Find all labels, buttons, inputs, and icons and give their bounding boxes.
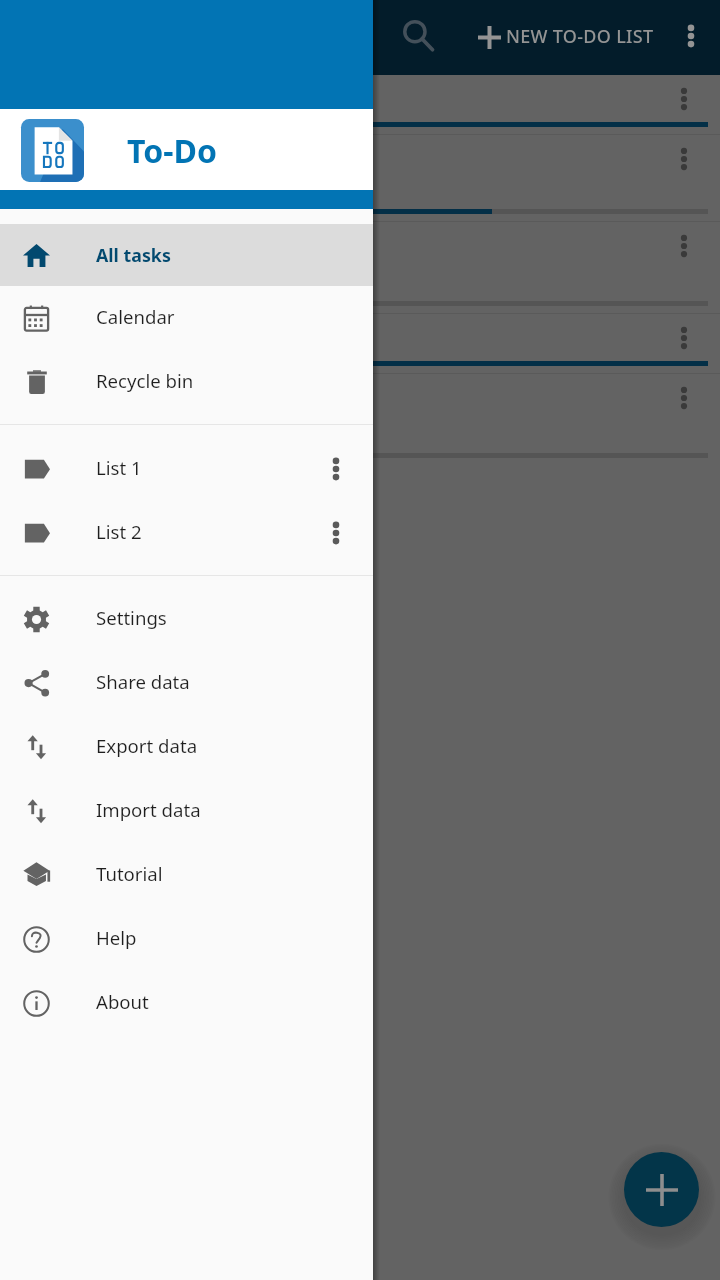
- staticText: Recycle bin: [96, 368, 194, 393]
- button[interactable]: Search: [393, 11, 441, 59]
- button[interactable]: List options: [0, 222, 720, 314]
- button[interactable]: Recycle bin: [0, 350, 373, 414]
- button[interactable]: NEW TO-DO LIST: [465, 13, 668, 62]
- staticText: Calendar: [96, 304, 175, 329]
- button[interactable]: About: [0, 971, 373, 1035]
- button[interactable]: List options: [0, 135, 720, 222]
- staticText: List 1: [96, 455, 142, 480]
- button[interactable]: List options: [0, 314, 720, 374]
- button[interactable]: Settings: [0, 587, 373, 651]
- button[interactable]: Help: [0, 907, 373, 971]
- button[interactable]: Import data: [0, 779, 373, 843]
- staticText: Tutorial: [96, 861, 163, 886]
- staticText: Share data: [96, 669, 190, 694]
- button[interactable]: Share data: [0, 651, 373, 715]
- staticText: NEW TO-DO LIST: [506, 24, 654, 49]
- staticText: About: [96, 989, 149, 1014]
- staticText: Import data: [96, 797, 201, 822]
- staticText: Settings: [96, 605, 167, 630]
- button[interactable]: List 1: [0, 437, 373, 501]
- button[interactable]: List options: [666, 228, 702, 264]
- button[interactable]: List options: [314, 447, 358, 491]
- button[interactable]: List 2: [0, 501, 373, 565]
- button[interactable]: More options: [669, 14, 713, 58]
- staticText: List 2: [96, 519, 142, 544]
- button[interactable]: List options: [666, 320, 702, 356]
- button[interactable]: List options: [314, 511, 358, 555]
- button[interactable]: Add task: [624, 1152, 699, 1227]
- staticText: All tasks: [96, 243, 171, 267]
- button[interactable]: Export data: [0, 715, 373, 779]
- staticText: Export data: [96, 733, 198, 758]
- button[interactable]: Tutorial: [0, 843, 373, 907]
- button[interactable]: List options: [666, 81, 702, 117]
- button[interactable]: Calendar: [0, 286, 373, 350]
- button[interactable]: List options: [0, 75, 720, 135]
- button[interactable]: All tasks: [0, 224, 373, 286]
- button[interactable]: List options: [0, 374, 720, 466]
- button[interactable]: List options: [666, 380, 702, 416]
- staticText: To-Do: [127, 129, 217, 173]
- staticText: Help: [96, 925, 137, 950]
- button[interactable]: List options: [666, 141, 702, 177]
